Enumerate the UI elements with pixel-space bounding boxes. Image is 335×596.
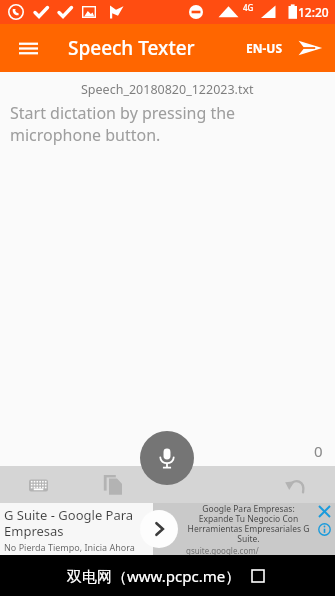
staticText: gsuite.google.com/GoogleEmpres... — [186, 545, 311, 555]
button[interactable]: Recent apps — [247, 565, 269, 587]
staticText: 12:20 — [298, 4, 329, 20]
button[interactable]: Open navigation menu — [7, 27, 49, 69]
staticText: 0 — [314, 441, 323, 461]
button[interactable]: Undo — [277, 467, 313, 503]
button[interactable]: G Suite - Google Para Empresas — [0, 503, 335, 555]
button[interactable]: Copy text — [95, 467, 131, 503]
staticText: Google Para Empresas: Expande Tu Negocio… — [186, 503, 311, 545]
staticText: 双电网（www.pcpc.me） — [67, 566, 241, 586]
staticText: EN-US — [246, 40, 283, 56]
button[interactable]: EN-US — [242, 32, 287, 64]
staticText: Start dictation by pressing the micropho… — [10, 102, 261, 146]
button[interactable]: Ad information — [316, 521, 332, 537]
button[interactable]: Keyboard — [20, 467, 56, 503]
staticText: G Suite - Google Para Empresas — [4, 506, 150, 539]
staticText: No Pierda Tiempo, Inicia Ahora — [4, 541, 135, 553]
button[interactable]: Start dictation with microphone — [140, 431, 194, 485]
staticText: Speech Texter — [68, 35, 195, 61]
button[interactable]: Send — [289, 27, 331, 69]
staticText: 4G — [243, 2, 254, 13]
staticText: Speech_20180820_122023.txt — [81, 81, 254, 98]
button[interactable]: Open ad — [140, 510, 178, 548]
button[interactable]: Close ad — [316, 503, 333, 520]
